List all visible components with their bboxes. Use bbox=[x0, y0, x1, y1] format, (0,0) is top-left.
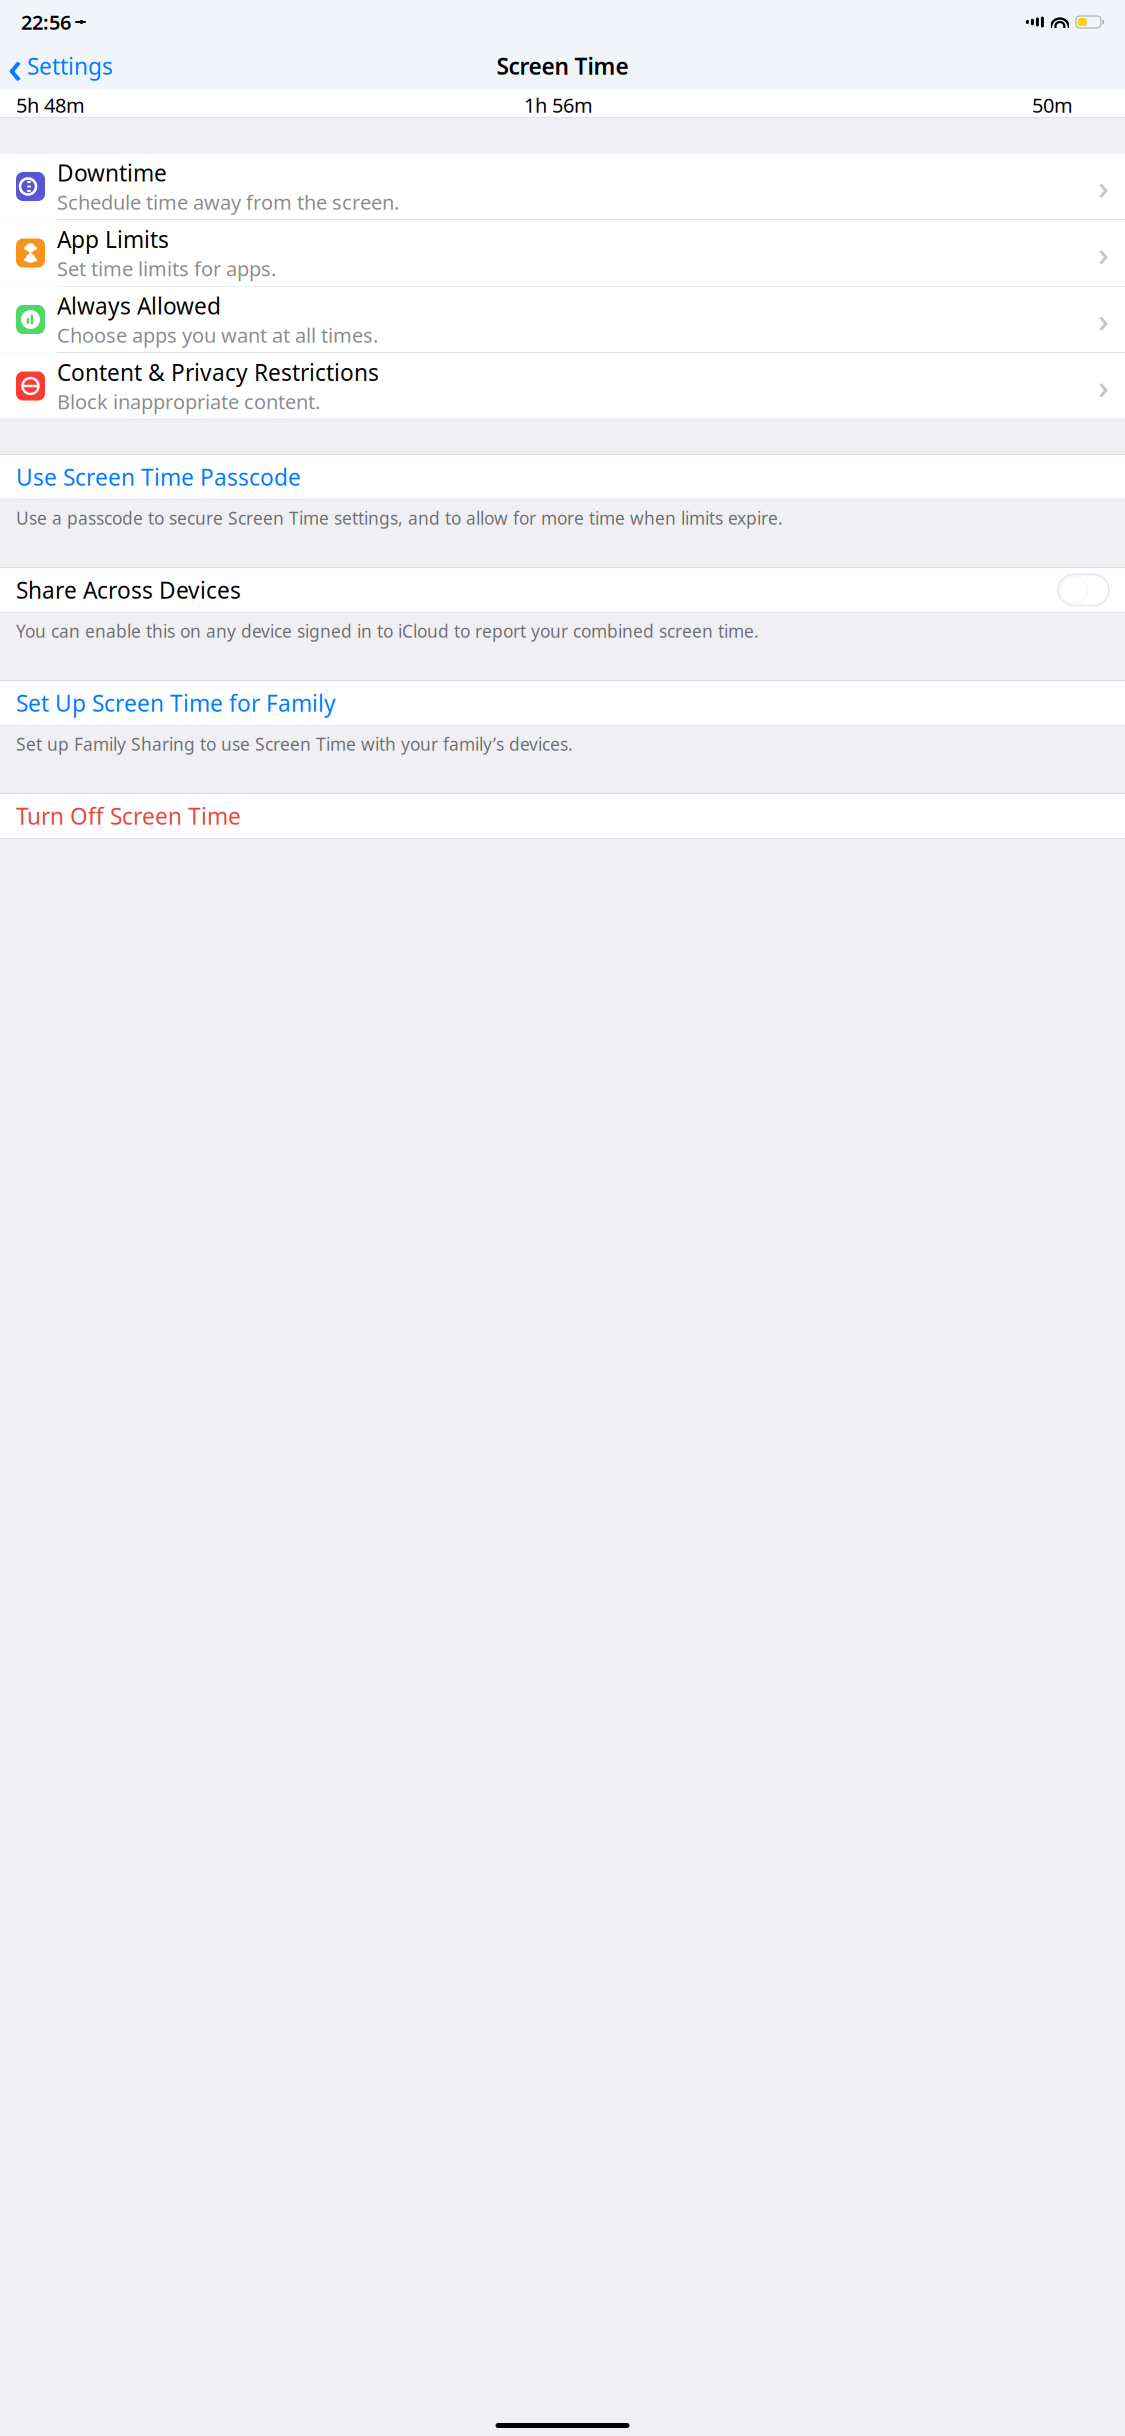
staticText: Choose apps you want at all times. bbox=[57, 322, 378, 348]
staticText: 5h 48m bbox=[16, 92, 85, 118]
staticText: App Limits bbox=[57, 224, 169, 254]
button[interactable]: Downtime bbox=[0, 153, 1125, 219]
staticText: Set Up Screen Time for Family bbox=[16, 688, 336, 718]
staticText: Use a passcode to secure Screen Time set… bbox=[16, 506, 783, 529]
staticText: Set up Family Sharing to use Screen Time… bbox=[16, 732, 573, 755]
staticText: Block inappropriate content. bbox=[57, 388, 320, 415]
staticText: Set time limits for apps. bbox=[57, 255, 276, 282]
staticText: ‹ bbox=[7, 36, 22, 96]
button[interactable]: Content & Privacy Restrictions bbox=[0, 353, 1125, 419]
button[interactable]: Use Screen Time Passcode bbox=[0, 455, 1125, 499]
button[interactable]: Set Up Screen Time for Family bbox=[0, 681, 1125, 725]
staticText: 22:56 bbox=[21, 9, 71, 35]
staticText: Use Screen Time Passcode bbox=[16, 462, 301, 492]
staticText: You can enable this on any device signed… bbox=[16, 619, 759, 642]
button[interactable]: Always Allowed bbox=[0, 286, 1125, 352]
staticText: Always Allowed bbox=[57, 291, 221, 321]
button[interactable]: App Limits bbox=[0, 220, 1125, 286]
button[interactable]: Share Across Devices bbox=[0, 568, 1125, 612]
staticText: › bbox=[1098, 297, 1109, 342]
staticText: Screen Time bbox=[496, 51, 628, 81]
staticText: › bbox=[1098, 164, 1109, 209]
staticText: Share Across Devices bbox=[16, 575, 241, 605]
staticText: Downtime bbox=[57, 158, 167, 188]
staticText: 1h 56m bbox=[524, 92, 593, 118]
staticText: Settings bbox=[27, 51, 113, 81]
button[interactable]: Turn Off Screen Time bbox=[0, 794, 1125, 838]
staticText: Content & Privacy Restrictions bbox=[57, 357, 379, 387]
staticText: › bbox=[1098, 231, 1109, 275]
staticText: 50m bbox=[1032, 92, 1073, 118]
button[interactable]: ‹ bbox=[0, 45, 123, 87]
staticText: › bbox=[1098, 364, 1109, 408]
staticText: Turn Off Screen Time bbox=[16, 801, 241, 831]
staticText: Schedule time away from the screen. bbox=[57, 189, 399, 215]
